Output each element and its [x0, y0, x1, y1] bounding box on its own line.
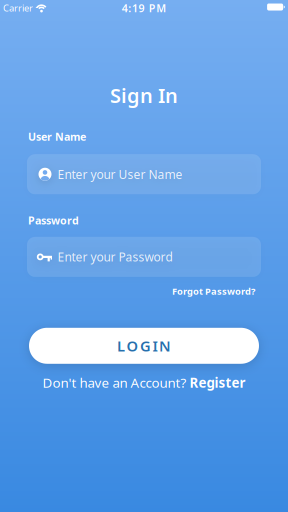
button[interactable]: Enter your Password: [27, 237, 261, 277]
button[interactable]: Enter your User Name: [27, 154, 261, 194]
staticText: Enter your Password: [57, 249, 172, 265]
staticText: Password: [28, 213, 79, 227]
button[interactable]: LOGIN: [29, 328, 259, 364]
staticText: Carrier: [3, 2, 33, 14]
staticText: Forgot Password?: [172, 285, 255, 297]
staticText: Enter your User Name: [57, 166, 182, 182]
button[interactable]: Don't have an Account? Register: [42, 374, 245, 391]
staticText: Sign In: [110, 82, 178, 109]
staticText: 4:19 PM: [122, 1, 166, 15]
staticText: User Name: [28, 130, 86, 144]
button[interactable]: Forgot Password?: [172, 285, 255, 297]
staticText: LOGIN: [117, 336, 171, 355]
staticText: Don't have an Account? Register: [42, 374, 245, 391]
